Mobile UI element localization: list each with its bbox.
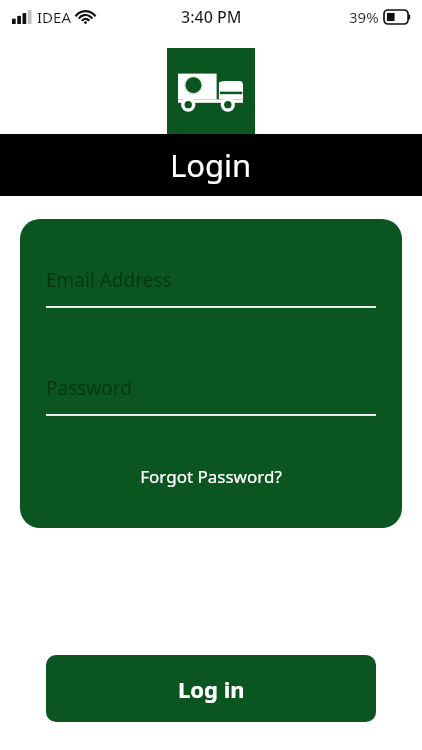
staticText: IDEA	[37, 7, 71, 27]
staticText: Password	[46, 375, 132, 401]
staticText: Login	[170, 144, 252, 186]
staticText: Log in	[178, 674, 245, 704]
button[interactable]: Email Address	[46, 267, 376, 293]
button[interactable]: Password	[46, 375, 376, 401]
staticText: 3:40 PM	[181, 6, 242, 28]
button[interactable]: Forgot Password?	[46, 459, 376, 493]
button[interactable]: Log in	[46, 655, 376, 722]
staticText: Email Address	[46, 267, 172, 293]
staticText: 39%	[349, 7, 379, 27]
staticText: Forgot Password?	[140, 465, 282, 488]
other: App logo	[178, 69, 244, 115]
